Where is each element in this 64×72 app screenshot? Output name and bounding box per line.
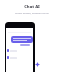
button[interactable] [20,44,30,46]
button[interactable] [7,49,32,52]
button[interactable] [7,56,32,59]
button[interactable] [11,36,33,43]
other: AI sparkle [35,62,40,67]
staticText: Instant answers, anywhere you go [15,12,49,15]
staticText: Chat AI [24,4,40,10]
